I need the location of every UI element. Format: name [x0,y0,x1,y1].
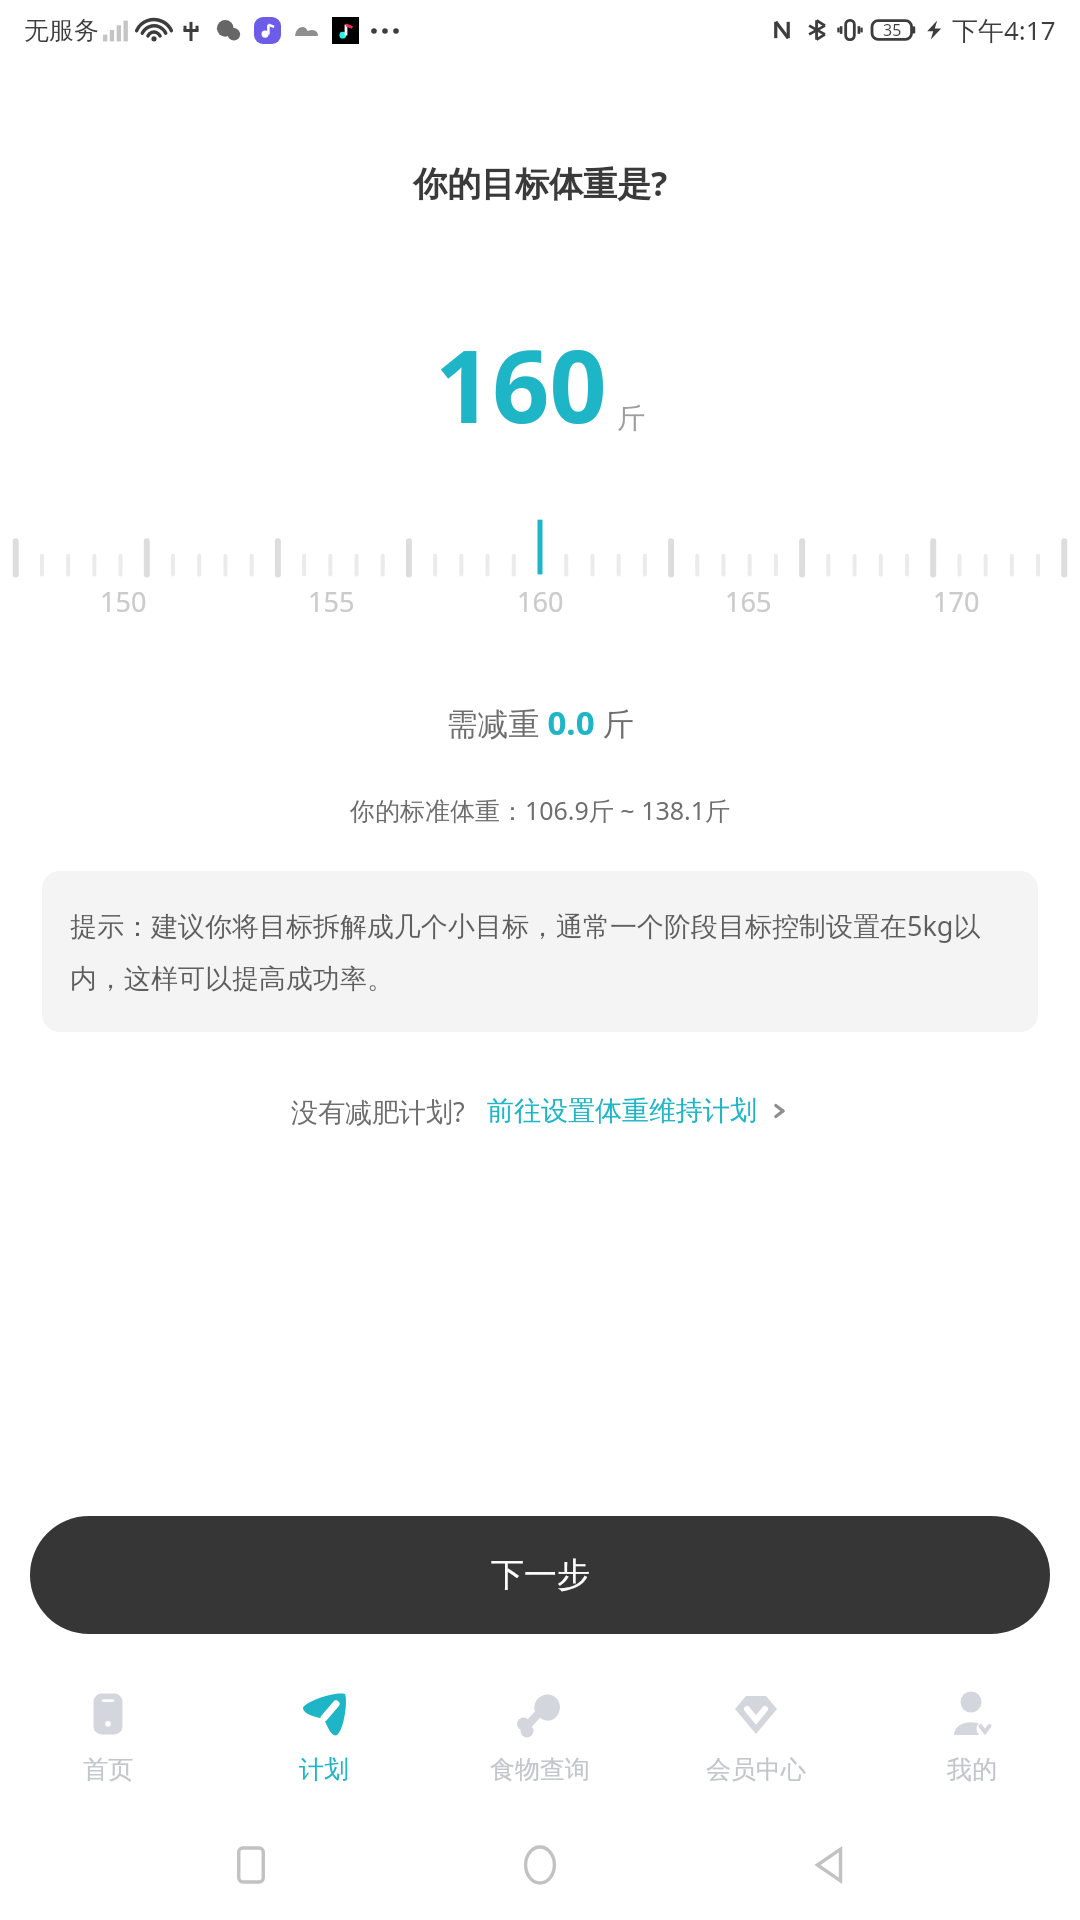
staticText: 斤 [617,401,645,436]
staticText: 没有减肥计划? [291,1093,465,1130]
button[interactable]: Back [791,1827,867,1903]
button[interactable]: 计划 [216,1660,432,1810]
staticText: 你的标准体重：106.9斤 ~ 138.1斤 [0,793,1080,827]
button[interactable]: 下一步 [30,1516,1050,1634]
button[interactable]: 我的 [864,1660,1080,1810]
button[interactable]: Home [502,1827,578,1903]
staticText: 食物查询 [490,1754,590,1785]
staticText: 计划 [299,1754,349,1785]
staticText: 170 [933,583,980,620]
staticText: 需减重 0.0 斤 [0,700,1080,745]
staticText: 35 [883,19,902,41]
staticText: 160 [517,583,564,620]
staticText: 155 [308,583,355,620]
staticText: 150 [100,583,147,620]
button[interactable]: Recents [213,1827,289,1903]
staticText: 下午4:17 [952,12,1056,48]
button[interactable]: 首页 [0,1660,216,1810]
staticText: 会员中心 [706,1754,806,1785]
staticText: 160 [435,316,607,452]
button[interactable]: 食物查询 [432,1660,648,1810]
staticText: 无服务 [24,15,99,46]
staticText: 下一步 [491,1554,590,1596]
staticText: 前往设置体重维持计划 [487,1094,757,1128]
staticText: 你的目标体重是? [0,160,1080,206]
button[interactable]: 会员中心 [648,1660,864,1810]
button[interactable]: 前往设置体重维持计划 [487,1088,789,1134]
staticText: 首页 [83,1754,133,1785]
staticText: 165 [725,583,772,620]
staticText: 我的 [947,1754,997,1785]
staticText: 提示：建议你将目标拆解成几个小目标，通常一个阶段目标控制设置在5kg以内，这样可… [70,907,1010,996]
